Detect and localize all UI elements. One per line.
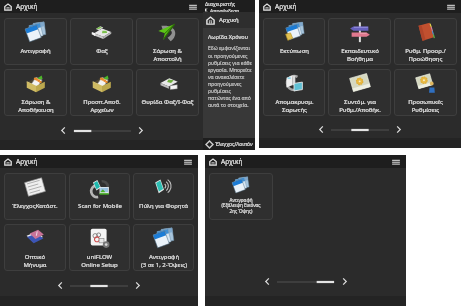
- staticText: Διαχειριστής: [205, 1, 236, 8]
- staticText: Αντιγραφή (3 σε 1, 2-Όψεις): [141, 253, 187, 269]
- button[interactable]: Οπτικό Μήνυμα: [4, 224, 66, 271]
- staticText: Αρχική: [16, 2, 38, 11]
- staticText: Αρχική: [221, 157, 243, 166]
- staticText: Αρχική: [219, 16, 239, 24]
- staticText: Θυρίδα Φαξ/I-Φαξ: [141, 98, 194, 106]
- staticText: Λωρίδα Χρόνου: [208, 33, 248, 40]
- staticText: Εδώ εμφανίζονται οι προηγούμενες ρυθμίσε…: [208, 45, 252, 108]
- button[interactable]: Scan for Mobile: [69, 173, 130, 220]
- staticText: Αρχική: [275, 2, 297, 11]
- button[interactable]: Φαξ: [70, 18, 133, 65]
- button[interactable]: Προσπ.Αποθ. Αρχείων: [70, 69, 133, 116]
- button[interactable]: Πύλη για Φορητά: [133, 173, 194, 220]
- staticText: Έλεγχος/Λοιπόν: [215, 141, 253, 148]
- staticText: Φαξ: [96, 47, 108, 55]
- button[interactable]: Next page: [132, 280, 143, 291]
- button[interactable]: Σάρωση & Αποθήκευση: [4, 69, 67, 116]
- button[interactable]: Εκτύπωση: [263, 18, 325, 65]
- button[interactable]: Menu: [183, 157, 193, 167]
- button[interactable]: Previous page: [262, 276, 273, 287]
- staticText: Αρχική: [16, 157, 38, 166]
- button[interactable]: Menu: [391, 157, 401, 167]
- button[interactable]: Εκπαιδευτικό Βοήθημα: [328, 18, 391, 65]
- button[interactable]: Ρυθμ. Προορ./ Προώθησης: [394, 18, 457, 65]
- button[interactable]: Απομακρυσμ. Σαρωτής: [263, 69, 325, 116]
- staticText: Αντιγραφή (Εξάλειψη Εικόνας 2ης Όψης): [221, 197, 261, 215]
- button[interactable]: Προσωπικές Ρυθμίσεις: [394, 69, 457, 116]
- staticText: uniFLOW Online Setup: [81, 253, 118, 269]
- staticText: Προσωπικές Ρυθμίσεις: [408, 98, 443, 114]
- staticText: Αποσύνδεση: [210, 8, 240, 12]
- staticText: Σάρωση & Αποστολή: [153, 47, 182, 63]
- button[interactable]: Next page: [135, 125, 146, 136]
- button[interactable]: Σάρωση & Αποστολή: [136, 18, 199, 65]
- staticText: Εκπαιδευτικό Βοήθημα: [341, 47, 379, 63]
- button[interactable]: Previous page: [316, 124, 327, 135]
- staticText: Συντόμ. για Ρυθμ./Αποθήκ.: [339, 98, 381, 114]
- button[interactable]: Αντιγραφή (Εξάλειψη Εικόνας 2ης Όψης): [209, 173, 273, 220]
- staticText: Εκτύπωση: [280, 47, 309, 55]
- button[interactable]: ΈλεγχοςΚατάστ.: [4, 173, 66, 220]
- button[interactable]: Αρχική: [206, 12, 255, 28]
- button[interactable]: Menu: [446, 2, 456, 12]
- button[interactable]: Previous page: [58, 125, 69, 136]
- staticText: Ρυθμ. Προορ./ Προώθησης: [405, 47, 446, 63]
- button[interactable]: Next page: [393, 124, 404, 135]
- button[interactable]: Αντιγραφή (3 σε 1, 2-Όψεις): [133, 224, 194, 271]
- button[interactable]: uniFLOW Online Setup: [69, 224, 130, 271]
- button[interactable]: Menu: [188, 2, 198, 12]
- staticText: Πύλη για Φορητά: [139, 202, 188, 210]
- button[interactable]: Θυρίδα Φαξ/I-Φαξ: [136, 69, 199, 116]
- staticText: Σάρωση & Αποθήκευση: [18, 98, 54, 114]
- button[interactable]: Αντιγραφή: [4, 18, 67, 65]
- button[interactable]: Previous page: [55, 280, 66, 291]
- staticText: Προσπ.Αποθ. Αρχείων: [83, 98, 121, 114]
- button[interactable]: Next page: [339, 276, 350, 287]
- staticText: Οπτικό Μήνυμα: [23, 253, 47, 269]
- staticText: Αντιγραφή: [20, 47, 51, 55]
- button[interactable]: Συντόμ. για Ρυθμ./Αποθήκ.: [328, 69, 391, 116]
- staticText: ΈλεγχοςΚατάστ.: [12, 202, 58, 210]
- staticText: Scan for Mobile: [78, 202, 122, 210]
- button[interactable]: Έλεγχος/Λοιπόν: [205, 138, 255, 150]
- staticText: Απομακρυσμ. Σαρωτής: [275, 98, 314, 114]
